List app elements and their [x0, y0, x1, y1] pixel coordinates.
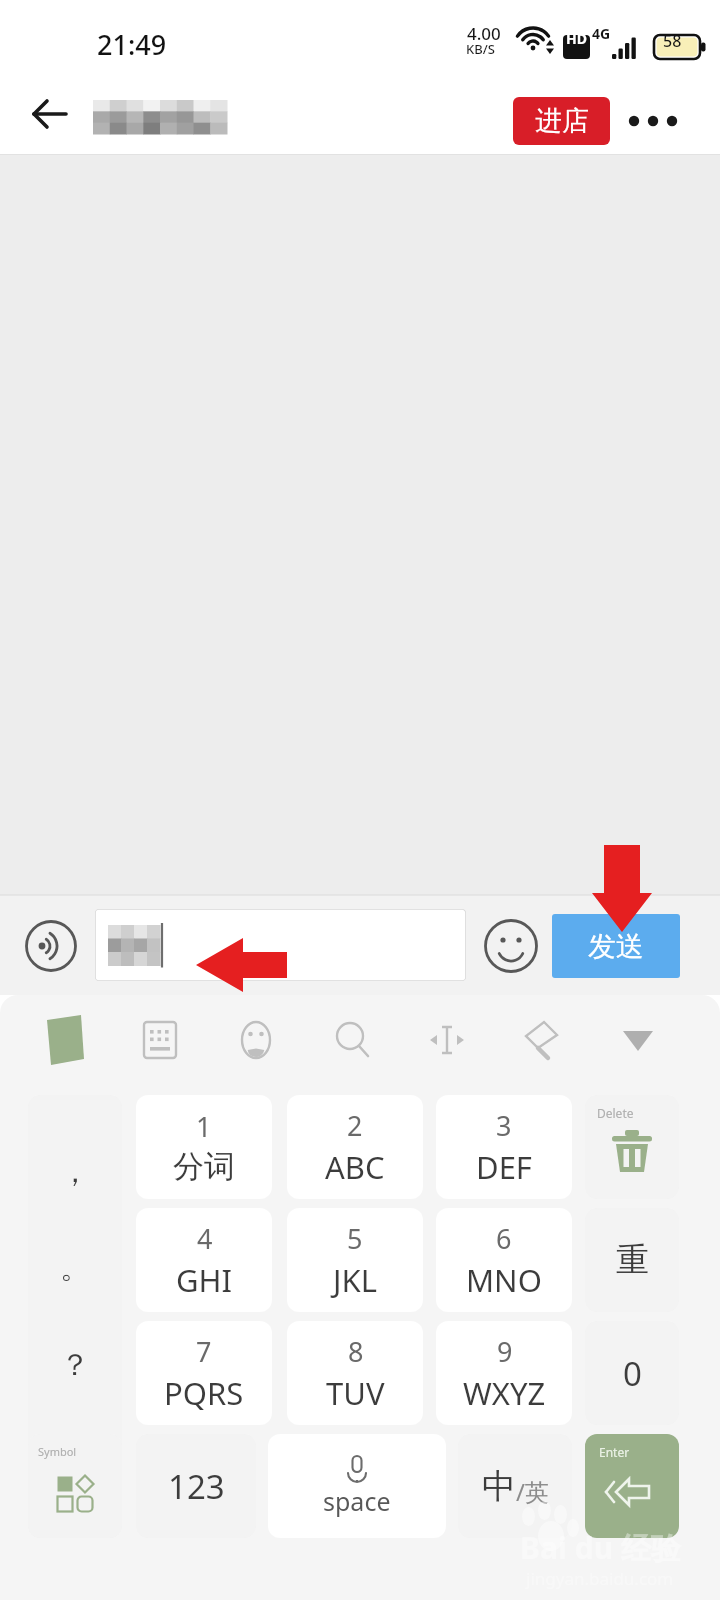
button[interactable]: More options	[620, 88, 686, 154]
staticText: JKL	[333, 1259, 377, 1301]
button[interactable]: Space	[268, 1434, 446, 1538]
staticText: /英	[516, 1475, 549, 1508]
button[interactable]: 9	[436, 1321, 572, 1425]
button[interactable]: Skin	[509, 1007, 575, 1073]
button[interactable]: Emoji	[478, 913, 544, 979]
staticText: Symbol	[38, 1444, 77, 1459]
staticText: 58	[663, 30, 682, 52]
staticText: 重	[616, 1239, 649, 1281]
staticText: 6	[496, 1220, 512, 1257]
staticText: Enter	[599, 1444, 630, 1460]
button[interactable]: Keyboard layout	[127, 1007, 193, 1073]
button[interactable]: Delete	[585, 1095, 679, 1199]
staticText: 21:49	[97, 26, 167, 63]
button[interactable]: Symbols	[28, 1434, 122, 1538]
staticText: 9	[497, 1333, 513, 1370]
button[interactable]: ，	[28, 1095, 122, 1538]
button[interactable]: 5	[287, 1208, 423, 1312]
staticText: TUV	[326, 1372, 385, 1414]
staticText: 2	[347, 1107, 363, 1144]
button[interactable]: Cursor	[414, 1007, 480, 1073]
staticText: ？	[60, 1346, 90, 1384]
staticText: 。	[60, 1249, 90, 1287]
staticText: ，	[60, 1153, 90, 1191]
button[interactable]: 重	[585, 1208, 679, 1312]
staticText: ABC	[325, 1146, 385, 1188]
staticText: 123	[168, 1464, 225, 1509]
staticText: 4G	[592, 24, 611, 43]
button[interactable]: 4	[136, 1208, 272, 1312]
button[interactable]: 发送	[552, 914, 680, 978]
button[interactable]: Collapse keyboard	[605, 1007, 671, 1073]
button[interactable]: Emoji	[223, 1007, 289, 1073]
button[interactable]: Enter	[585, 1434, 679, 1538]
staticText: 4	[197, 1220, 213, 1257]
staticText: 1	[196, 1108, 212, 1145]
staticText: 进店	[535, 104, 589, 138]
staticText: DEF	[476, 1146, 532, 1188]
button[interactable]: 0	[585, 1321, 679, 1425]
staticText: Delete	[597, 1105, 634, 1121]
button[interactable]: Search	[319, 1007, 385, 1073]
button[interactable]: 3	[436, 1095, 572, 1199]
button[interactable]: 1	[136, 1095, 272, 1199]
button[interactable]: Chinese English toggle	[458, 1434, 572, 1538]
staticText: 中	[482, 1465, 516, 1508]
staticText: 5	[347, 1220, 363, 1257]
staticText: 4.00	[467, 22, 501, 45]
button[interactable]: 8	[287, 1321, 423, 1425]
staticText: GHI	[176, 1259, 233, 1301]
button[interactable]: 2	[287, 1095, 423, 1199]
staticText: ！	[60, 1442, 90, 1480]
staticText: Bai du 经验	[520, 1527, 681, 1568]
button[interactable]: 7	[136, 1321, 272, 1425]
staticText: 0	[623, 1351, 642, 1396]
staticText: HD	[566, 29, 587, 48]
button[interactable]: 6	[436, 1208, 572, 1312]
staticText: WXYZ	[463, 1372, 546, 1414]
staticText: 8	[348, 1333, 364, 1370]
button[interactable]: 123	[136, 1434, 256, 1538]
button[interactable]: Sogou	[32, 1007, 98, 1073]
button[interactable]	[95, 909, 466, 981]
staticText: 发送	[588, 929, 644, 964]
button[interactable]: Voice input	[18, 913, 84, 979]
button[interactable]: 进店	[513, 97, 610, 145]
staticText: 7	[196, 1333, 212, 1370]
staticText: PQRS	[164, 1372, 244, 1414]
staticText: KB/S	[466, 40, 495, 58]
staticText: 分词	[173, 1147, 235, 1186]
staticText: space	[323, 1484, 391, 1518]
staticText: MNO	[466, 1259, 542, 1301]
staticText: 3	[496, 1107, 512, 1144]
button[interactable]: Back	[16, 80, 84, 148]
